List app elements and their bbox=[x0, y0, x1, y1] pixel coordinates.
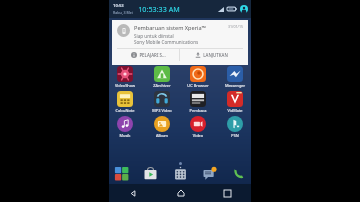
button[interactable]: MP3 Video Cu bbox=[150, 91, 174, 113]
button[interactable]: ZArchiver bbox=[150, 66, 174, 88]
button[interactable]: PSN bbox=[223, 116, 247, 138]
staticText: PSN bbox=[223, 133, 247, 138]
staticText: 10:53:33 AM bbox=[138, 4, 180, 14]
staticText: Video bbox=[186, 133, 210, 138]
staticText: 31/01/15 bbox=[227, 24, 243, 29]
button[interactable]: Play Store bbox=[143, 166, 158, 181]
staticText: VidMate bbox=[223, 108, 247, 113]
staticText: ZArchiver bbox=[150, 83, 174, 88]
button[interactable]: Phone bbox=[231, 166, 246, 181]
button[interactable]: Apps bbox=[173, 166, 188, 181]
button[interactable]: Home bbox=[157, 184, 204, 202]
button[interactable]: Video bbox=[186, 116, 210, 138]
staticText: MP3 Video Cu bbox=[150, 108, 174, 113]
button[interactable]: VidMate bbox=[223, 91, 247, 113]
button[interactable]: Musik bbox=[113, 116, 137, 138]
staticText: PELAJARI S... bbox=[139, 52, 166, 58]
button[interactable]: LANJUTKAN bbox=[180, 49, 243, 61]
staticText: Album bbox=[150, 133, 174, 138]
staticText: Pembaca Shal bbox=[186, 108, 210, 113]
staticText: Siap untuk diinstal bbox=[134, 33, 174, 39]
button[interactable]: Messenger bbox=[223, 66, 247, 88]
button[interactable]: CalcuNote bbox=[113, 91, 137, 113]
staticText: Sony Mobile Communications bbox=[134, 39, 199, 45]
staticText: UC Browser bbox=[186, 83, 210, 88]
staticText: Pembaruan sistem Xperia™ bbox=[134, 24, 206, 32]
staticText: 10:53 bbox=[113, 3, 124, 9]
button[interactable]: Recents bbox=[204, 184, 251, 202]
button[interactable]: Album bbox=[150, 116, 174, 138]
staticText: CalcuNote bbox=[113, 108, 137, 113]
staticText: Messenger bbox=[223, 83, 247, 88]
button[interactable]: Messaging bbox=[202, 166, 217, 181]
button[interactable]: Google folder bbox=[114, 166, 129, 181]
button[interactable]: UC Browser bbox=[186, 66, 210, 88]
button[interactable]: Pembaruan sistem Xperia™ bbox=[112, 20, 248, 65]
staticText: VideoShow bbox=[113, 83, 137, 88]
button[interactable]: Back bbox=[109, 184, 157, 202]
button[interactable]: VideoShow bbox=[113, 66, 137, 88]
button[interactable]: Pembaca Shal bbox=[186, 91, 210, 113]
staticText: LANJUTKAN bbox=[203, 52, 228, 58]
staticText: Musik bbox=[113, 133, 137, 138]
staticText: Rabu, 3 Mei bbox=[113, 10, 133, 15]
button[interactable]: PELAJARI S... bbox=[117, 49, 179, 61]
